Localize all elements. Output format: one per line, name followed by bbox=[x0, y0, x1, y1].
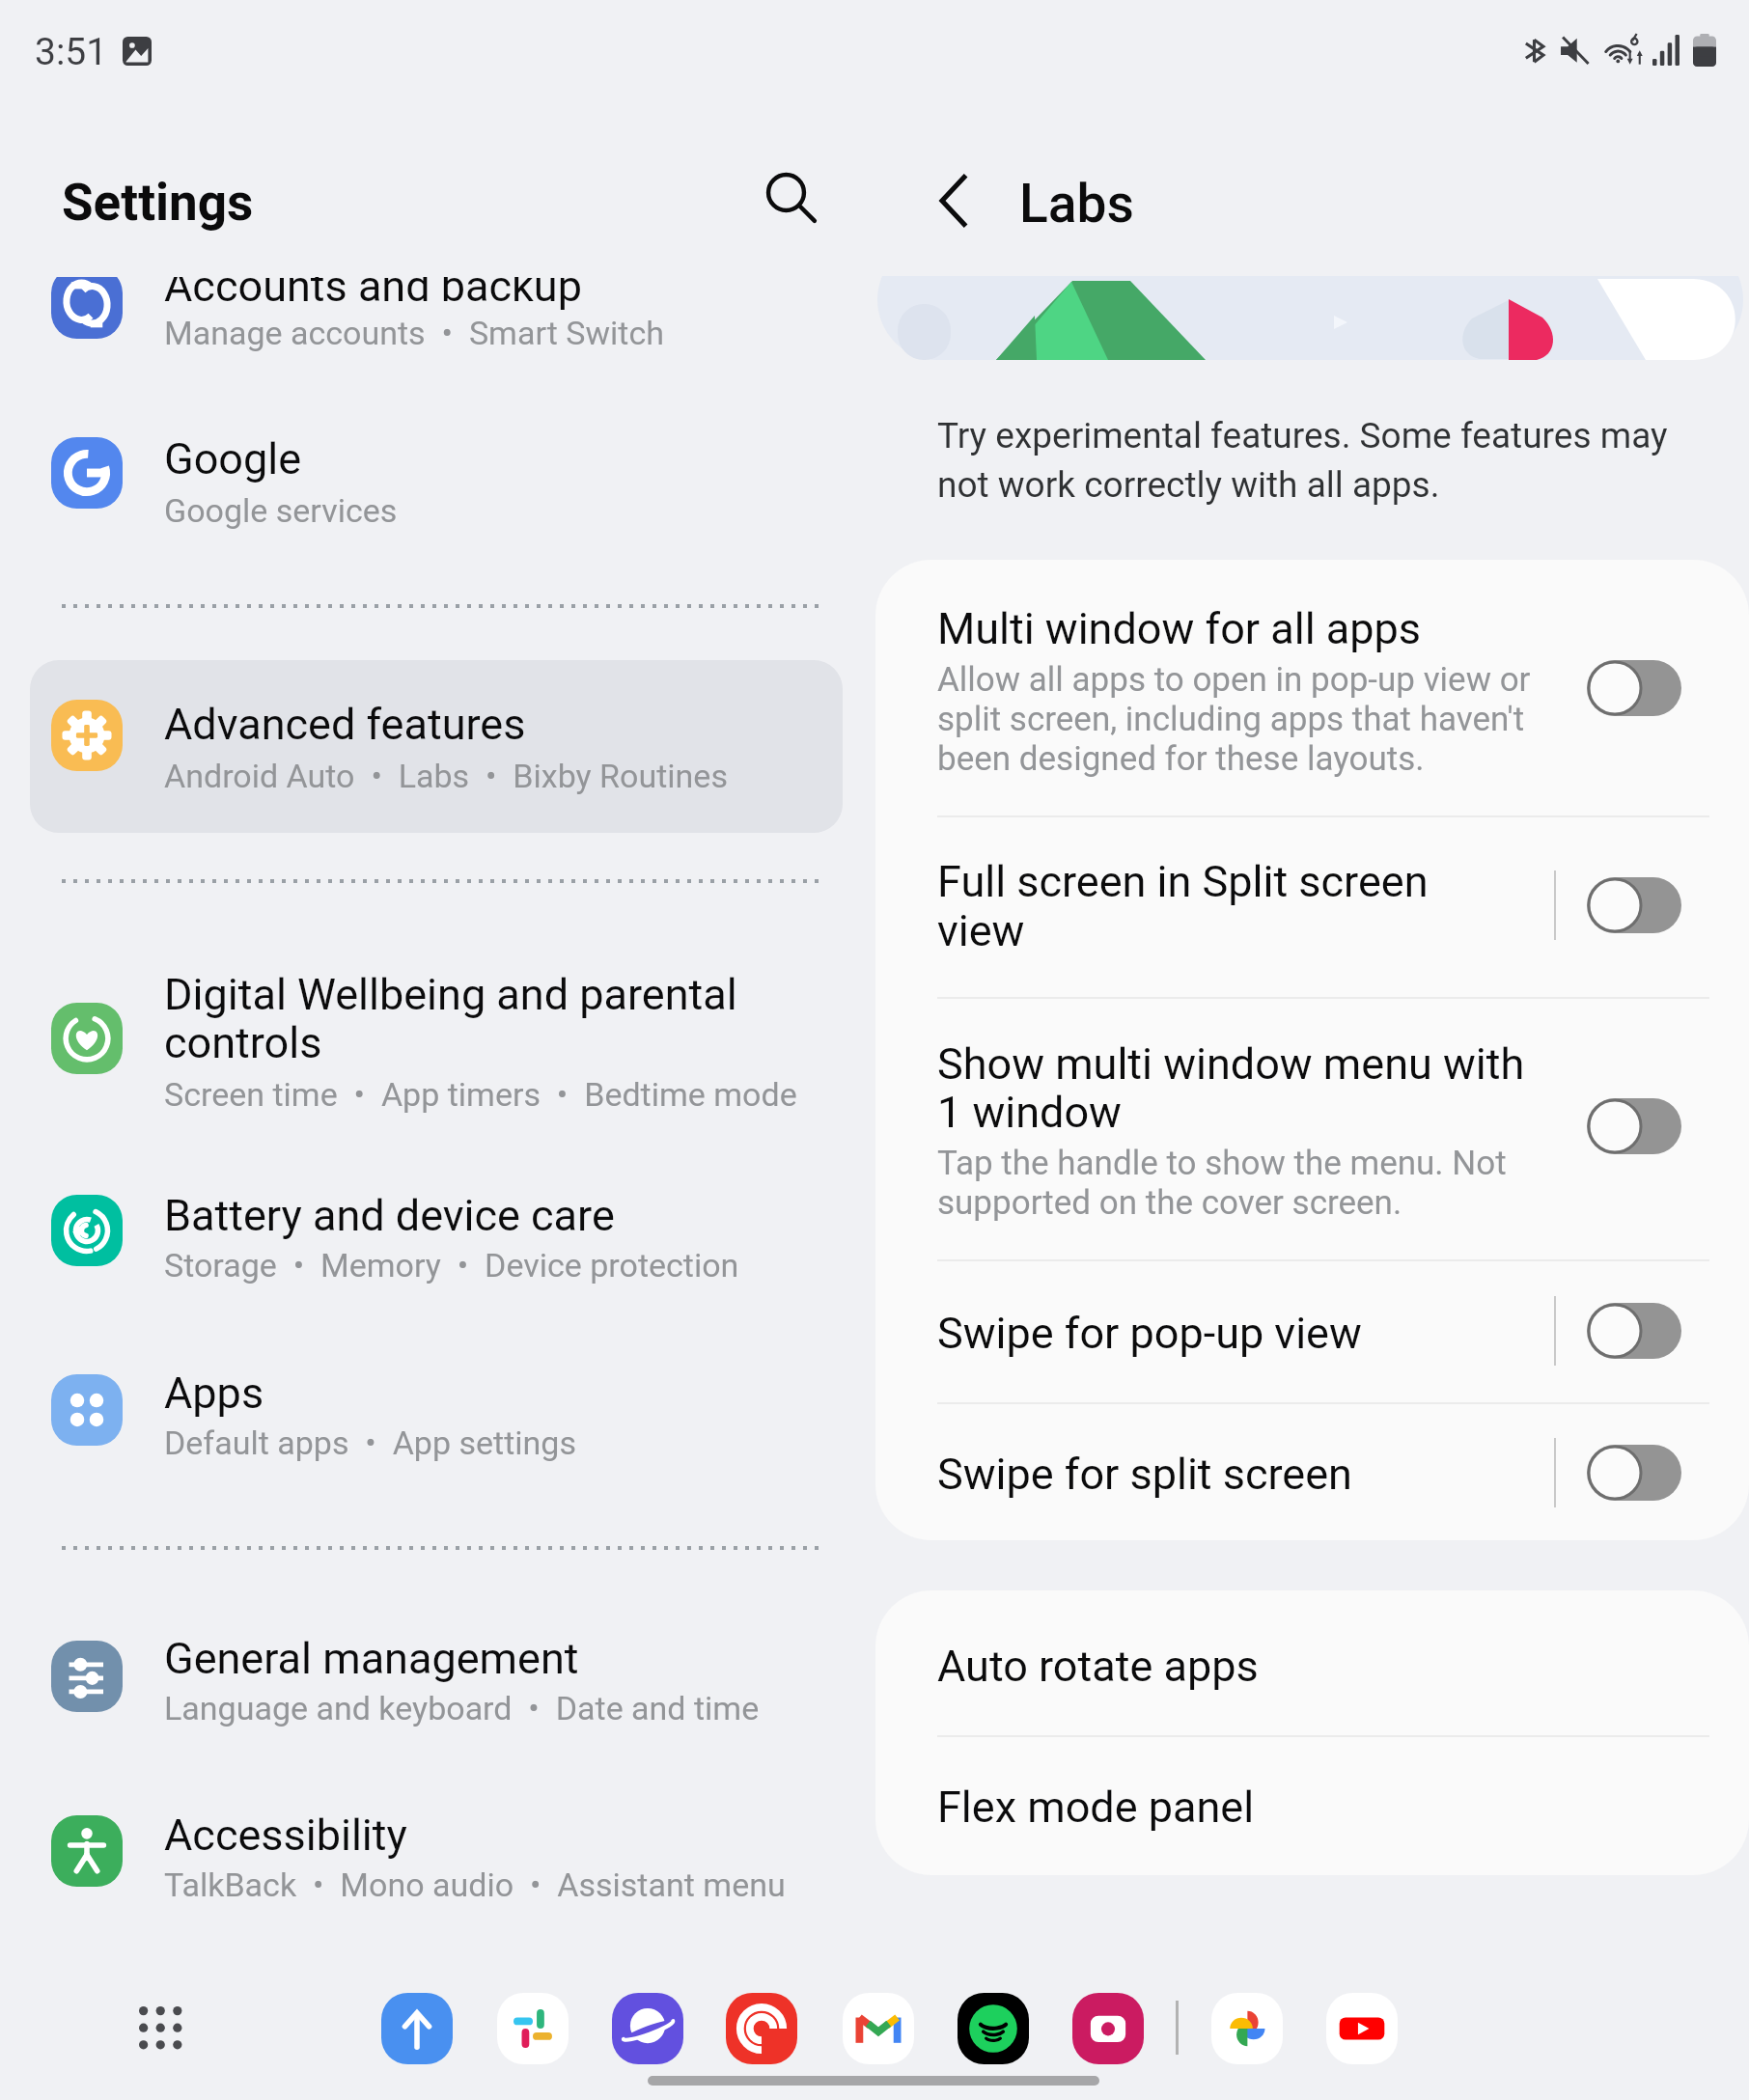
button[interactable] bbox=[32, 1775, 812, 1929]
staticText: Language and keyboard • Date and time bbox=[164, 1689, 760, 1727]
staticText: Multi window for all apps bbox=[937, 603, 1421, 654]
staticText: been designed for these layouts. bbox=[937, 739, 1425, 779]
staticText: view bbox=[937, 905, 1025, 956]
button[interactable]: Slack bbox=[496, 1992, 569, 2065]
staticText: Tap the handle to show the menu. Not bbox=[937, 1144, 1507, 1183]
staticText: Accounts and backup bbox=[164, 277, 582, 312]
staticText: Full screen in Split screen bbox=[937, 856, 1429, 907]
staticText: Digital Wellbeing and parental bbox=[164, 969, 737, 1020]
button[interactable] bbox=[875, 1402, 1749, 1540]
staticText: controls bbox=[164, 1017, 322, 1068]
button[interactable]: Samsung bbox=[380, 1992, 454, 2065]
button[interactable] bbox=[875, 1590, 1749, 1735]
staticText: Google services bbox=[164, 491, 398, 530]
staticText: Storage • Memory • Device protection bbox=[164, 1246, 739, 1285]
staticText: Labs bbox=[1019, 173, 1134, 235]
staticText: Swipe for pop-up view bbox=[937, 1308, 1362, 1359]
staticText: TalkBack • Mono audio • Assistant menu bbox=[164, 1865, 786, 1904]
button[interactable]: Back bbox=[907, 154, 1000, 247]
button[interactable]: Toggle bbox=[1587, 660, 1681, 716]
staticText: Android Auto • Labs • Bixby Routines bbox=[164, 757, 728, 795]
staticText: Advanced features bbox=[164, 699, 526, 750]
staticText: Google bbox=[164, 433, 302, 484]
button[interactable]: Toggle bbox=[1587, 877, 1681, 933]
button[interactable]: Internet bbox=[611, 1992, 684, 2065]
button[interactable] bbox=[32, 960, 812, 1148]
staticText: Accessibility bbox=[164, 1810, 407, 1861]
button[interactable] bbox=[32, 396, 812, 550]
staticText: not work correctly with all apps. bbox=[937, 464, 1440, 506]
button[interactable]: Toggle bbox=[1587, 1303, 1681, 1359]
button[interactable] bbox=[32, 1153, 812, 1308]
staticText: 1 window bbox=[937, 1087, 1122, 1138]
button[interactable] bbox=[875, 815, 1749, 997]
button[interactable]: Google Photos bbox=[1210, 1992, 1284, 2065]
staticText: Try experimental features. Some features… bbox=[937, 415, 1668, 456]
button[interactable]: Search bbox=[745, 151, 836, 241]
staticText: Default apps • App settings bbox=[164, 1423, 576, 1462]
button[interactable] bbox=[32, 1334, 812, 1488]
button[interactable] bbox=[875, 561, 1749, 815]
staticText: Show multi window menu with bbox=[937, 1038, 1525, 1090]
staticText: Allow all apps to open in pop-up view or bbox=[937, 660, 1531, 700]
staticText: Swipe for split screen bbox=[937, 1449, 1352, 1500]
button[interactable]: Gmail bbox=[842, 1992, 915, 2065]
staticText: split screen, including apps that haven'… bbox=[937, 700, 1525, 739]
staticText: supported on the cover screen. bbox=[937, 1183, 1402, 1223]
button[interactable] bbox=[30, 660, 843, 833]
staticText: Battery and device care bbox=[164, 1190, 615, 1241]
button[interactable] bbox=[875, 1735, 1749, 1875]
staticText: Settings bbox=[62, 173, 254, 233]
staticText: Apps bbox=[164, 1368, 264, 1419]
button[interactable]: Instagram bbox=[1071, 1992, 1145, 2065]
button[interactable] bbox=[875, 997, 1749, 1259]
staticText: Manage accounts • Smart Switch bbox=[164, 314, 664, 352]
button[interactable]: Toggle bbox=[1587, 1098, 1681, 1154]
button[interactable] bbox=[32, 1600, 812, 1755]
button[interactable]: Pocket Casts bbox=[725, 1992, 798, 2065]
button[interactable] bbox=[32, 277, 812, 386]
button[interactable]: YouTube bbox=[1325, 1992, 1399, 2065]
staticText: Auto rotate apps bbox=[937, 1641, 1259, 1692]
button[interactable]: Toggle bbox=[1587, 1445, 1681, 1501]
staticText: Screen time • App timers • Bedtime mode bbox=[164, 1075, 797, 1114]
staticText: Flex mode panel bbox=[937, 1782, 1255, 1833]
button[interactable]: Spotify bbox=[957, 1992, 1030, 2065]
staticText: General management bbox=[164, 1633, 579, 1684]
staticText: 3:51 bbox=[35, 30, 108, 74]
button[interactable] bbox=[875, 1259, 1749, 1402]
button[interactable]: All apps bbox=[125, 1993, 195, 2062]
